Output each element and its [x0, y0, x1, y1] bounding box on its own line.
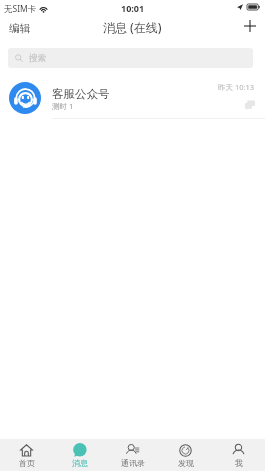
staticText: 昨天 10:13	[218, 82, 255, 92]
button[interactable]: 消息	[53, 439, 106, 471]
button[interactable]: 搜索	[8, 48, 253, 68]
button[interactable]: New message	[235, 14, 265, 44]
staticText: 我	[235, 458, 243, 468]
staticText: 消息 (在线)	[103, 19, 162, 35]
staticText: 搜索	[29, 53, 46, 64]
staticText: 编辑	[9, 22, 31, 35]
button[interactable]: 编辑	[0, 16, 40, 44]
staticText: 无SIM卡	[4, 3, 37, 15]
button[interactable]: 客服公众号	[0, 78, 265, 117]
staticText: 10:01	[121, 2, 145, 14]
button[interactable]: 我	[212, 439, 265, 471]
button[interactable]: 首页	[0, 439, 53, 471]
staticText: 测时 1	[52, 101, 74, 111]
staticText: 发现	[178, 458, 194, 468]
button[interactable]: 通讯录	[106, 439, 159, 471]
staticText: 通讯录	[121, 458, 145, 468]
button[interactable]: 发现	[159, 439, 212, 471]
staticText: 首页	[19, 458, 35, 468]
staticText: 客服公众号	[52, 87, 110, 101]
staticText: 消息	[72, 458, 88, 468]
